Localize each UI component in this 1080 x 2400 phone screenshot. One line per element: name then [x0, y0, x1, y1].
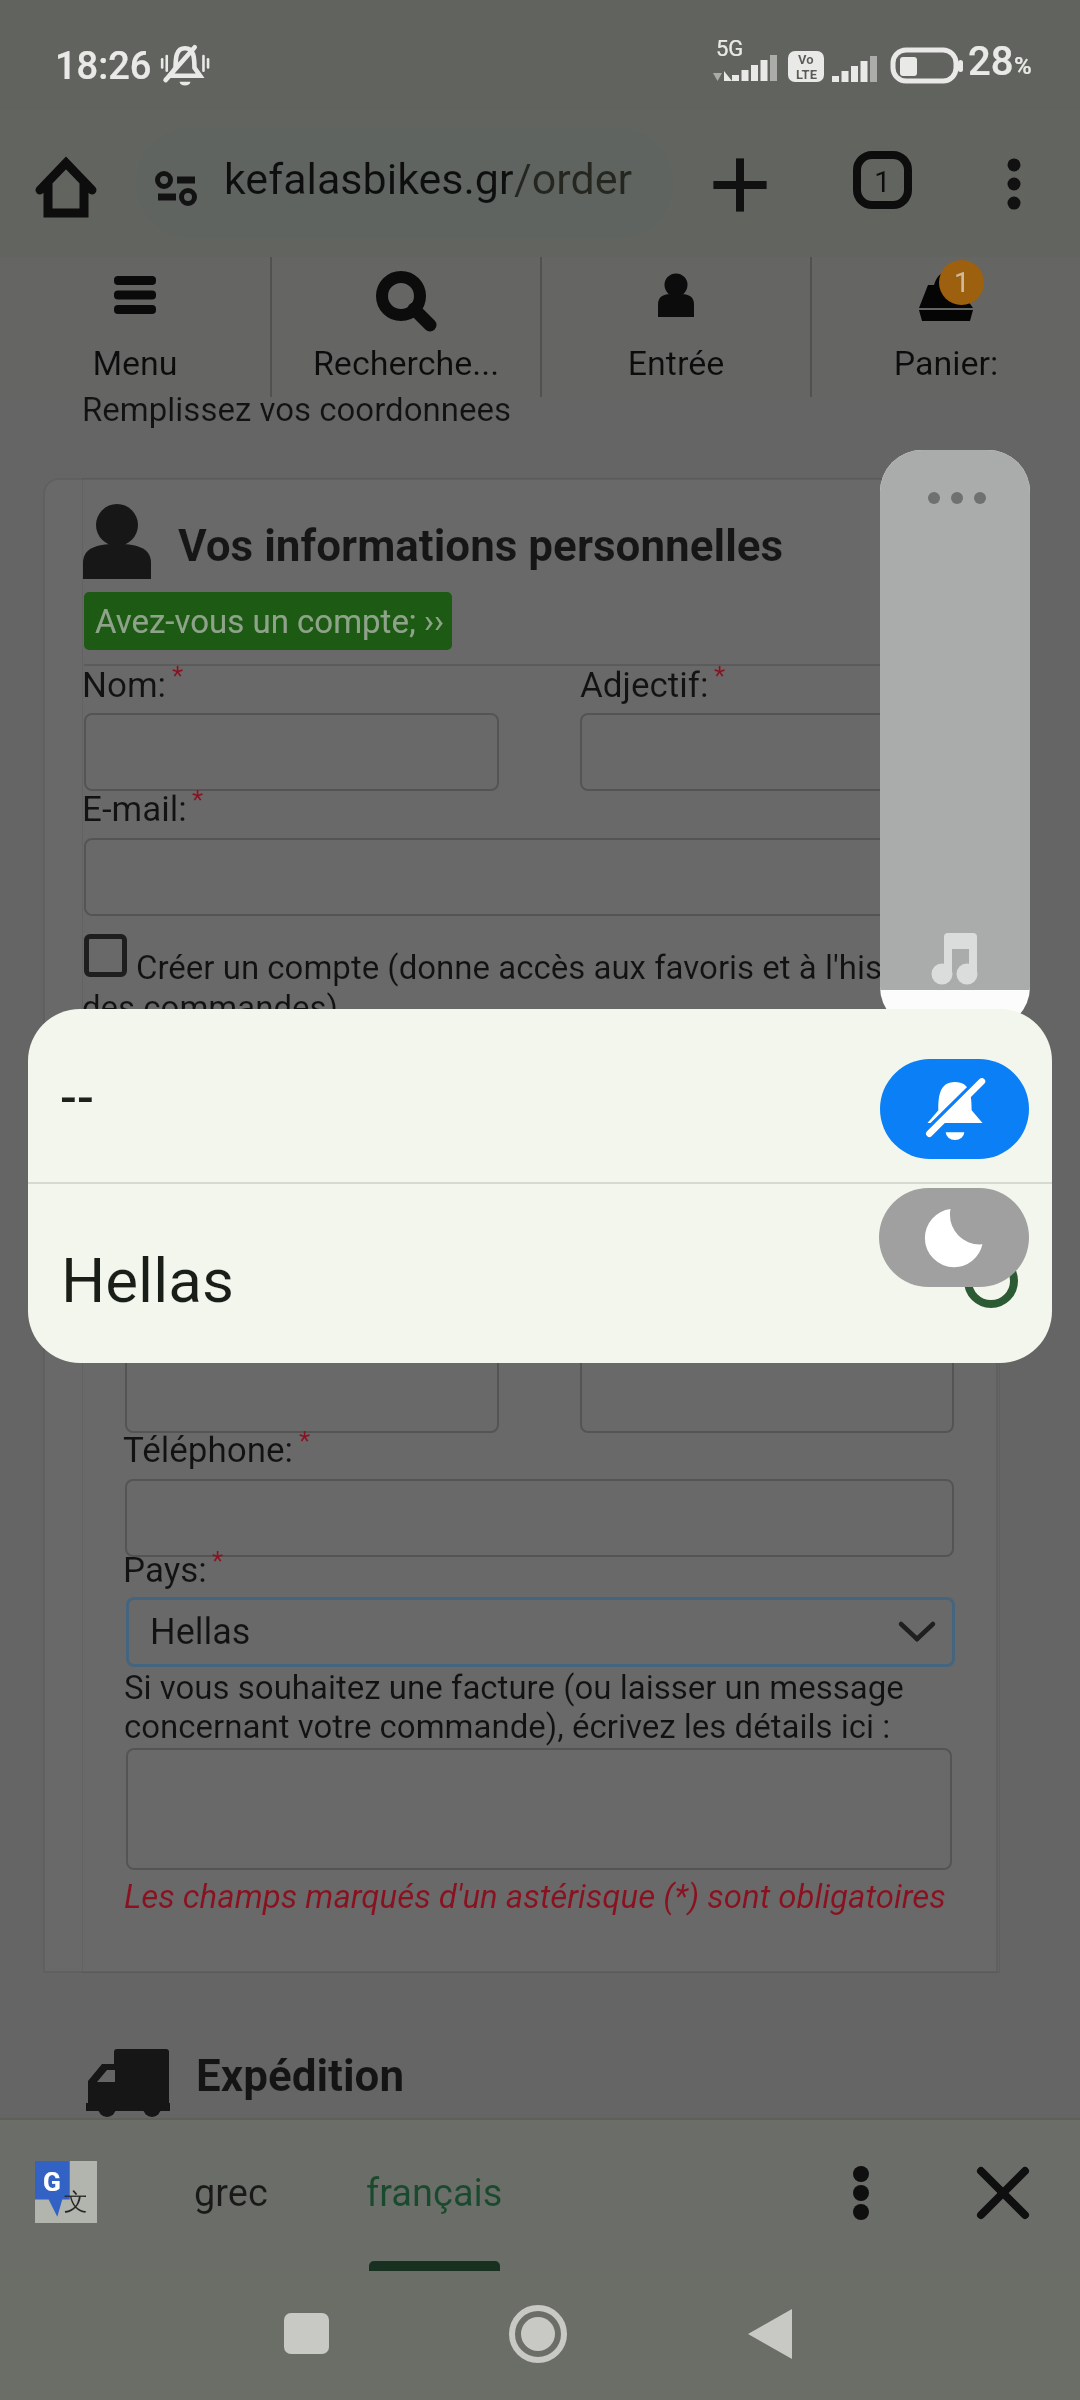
staticText: Panier:	[812, 343, 1080, 383]
button[interactable]: Recents	[258, 2271, 354, 2400]
staticText: Vos informations personnelles	[178, 520, 784, 572]
button[interactable]: Menu	[0, 257, 270, 397]
button[interactable]: Entrée	[542, 257, 810, 397]
button[interactable]: Home	[38, 152, 94, 208]
button[interactable]: Volume	[880, 450, 1030, 1029]
staticText: 18:26	[55, 44, 152, 89]
staticText: Expédition	[196, 2050, 405, 2102]
button[interactable]: Notifications off	[880, 1059, 1029, 1159]
button[interactable]: Back	[722, 2271, 818, 2400]
button[interactable]: Recherche...	[272, 257, 540, 397]
button[interactable]	[84, 934, 127, 977]
staticText: Si vous souhaitez une facture (ou laisse…	[124, 1668, 904, 1707]
staticText: 文	[64, 2187, 88, 2217]
staticText: Hellas	[150, 1611, 251, 1653]
staticText: Avez-vous un compte; ››	[95, 602, 444, 641]
button[interactable]: kefalasbikes.gr	[136, 128, 673, 238]
staticText: %	[1014, 52, 1032, 80]
button[interactable]: grec	[155, 2118, 307, 2269]
button[interactable]: français	[330, 2118, 538, 2269]
staticText: 28	[968, 38, 1014, 85]
staticText: --	[60, 1069, 94, 1128]
button[interactable]: More options	[826, 2158, 896, 2228]
button[interactable]: New tab	[705, 150, 775, 220]
button[interactable]: More options	[980, 150, 1048, 218]
button[interactable]: Panier:	[812, 257, 1080, 397]
staticText: Nom:	[82, 665, 167, 706]
staticText: français	[366, 2171, 503, 2216]
staticText: 1	[954, 266, 970, 299]
staticText: *	[299, 1426, 311, 1456]
button[interactable]: Do not disturb	[879, 1188, 1029, 1287]
staticText: *	[714, 661, 726, 691]
staticText: LTE	[796, 67, 817, 82]
staticText: Créer un compte (donne accès aux favoris…	[136, 948, 1016, 987]
button[interactable]: Google Translate	[35, 2161, 97, 2223]
staticText: Menu	[0, 343, 270, 383]
staticText: grec	[194, 2171, 268, 2216]
staticText: Recherche...	[272, 343, 540, 383]
staticText: 5G	[716, 36, 744, 62]
staticText: Téléphone:	[123, 1430, 294, 1471]
staticText: *	[212, 1546, 224, 1576]
staticText: G	[43, 2167, 61, 2197]
staticText: /order	[514, 154, 633, 204]
staticText: des commandes)	[82, 988, 339, 1027]
staticText: Entrée	[542, 343, 810, 383]
staticText: kefalasbikes.gr	[224, 154, 514, 204]
button[interactable]: Home	[490, 2271, 586, 2400]
staticText: concernant votre commande), écrivez les …	[124, 1707, 891, 1746]
staticText: Les champs marqués d'un astérisque (*) s…	[124, 1877, 946, 1916]
button[interactable]: Hellas	[126, 1597, 955, 1667]
button[interactable]: Close	[968, 2158, 1038, 2228]
button[interactable]: Avez-vous un compte; ››	[84, 592, 452, 650]
staticText: Vo	[798, 52, 814, 67]
button[interactable]: Hellas	[28, 1184, 1052, 1363]
button[interactable]: Tabs	[853, 151, 912, 209]
staticText: *	[172, 661, 184, 691]
staticText: 1	[874, 164, 891, 199]
staticText: Pays:	[123, 1550, 207, 1591]
staticText: Remplissez vos coordonnees	[82, 390, 511, 429]
staticText: Adjectif:	[580, 665, 709, 706]
button[interactable]: --	[28, 1009, 1052, 1182]
staticText: Hellas	[61, 1244, 234, 1317]
staticText: *	[192, 785, 204, 815]
staticText: E-mail:	[82, 789, 187, 830]
